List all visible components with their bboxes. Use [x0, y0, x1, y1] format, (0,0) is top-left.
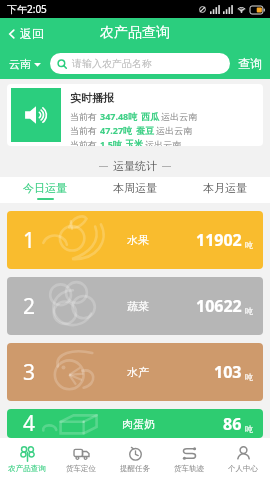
- staticText: 云南: [9, 57, 31, 71]
- button[interactable]: 2: [7, 277, 263, 335]
- staticText: 农产品查询: [100, 24, 170, 42]
- button[interactable]: 4: [7, 409, 263, 438]
- staticText: 当前有: [70, 138, 100, 146]
- button[interactable]: 提醒任务: [108, 438, 162, 480]
- staticText: 运出云南: [159, 110, 198, 122]
- staticText: 查询: [238, 56, 262, 71]
- button[interactable]: 云南: [6, 53, 44, 75]
- staticText: 1: [23, 226, 36, 255]
- staticText: 吨: [245, 372, 253, 382]
- staticText: 返回: [20, 26, 44, 41]
- staticText: 本月运量: [203, 181, 247, 195]
- button[interactable]: 3: [7, 343, 263, 401]
- button[interactable]: 请输入农产品名称: [50, 53, 230, 74]
- button[interactable]: 实时播报: [7, 84, 263, 146]
- staticText: 当前有: [70, 124, 100, 136]
- staticText: 玉米: [125, 138, 143, 146]
- button[interactable]: 农产品查询: [0, 438, 54, 480]
- button[interactable]: 本周运量: [90, 177, 180, 203]
- staticText: 86: [223, 413, 242, 435]
- staticText: 今日运量: [23, 181, 67, 195]
- staticText: 水产: [127, 365, 149, 379]
- staticText: 2: [23, 292, 36, 321]
- staticText: 347.48吨: [100, 110, 138, 122]
- staticText: 货车定位: [66, 464, 96, 473]
- staticText: 运出云南: [143, 138, 182, 146]
- staticText: 请输入农产品名称: [72, 57, 152, 70]
- staticText: 农产品查询: [8, 464, 46, 473]
- staticText: 西瓜: [141, 111, 159, 122]
- staticText: 本周运量: [113, 181, 157, 195]
- staticText: 肉蛋奶: [122, 417, 155, 431]
- staticText: 3: [23, 358, 36, 387]
- staticText: 10622: [196, 295, 242, 317]
- staticText: 水果: [127, 233, 149, 247]
- staticText: 个人中心: [228, 464, 258, 473]
- staticText: 吨: [245, 424, 253, 434]
- button[interactable]: 货车轨迹: [162, 438, 216, 480]
- button[interactable]: 本月运量: [180, 177, 270, 203]
- staticText: 运出云南: [154, 124, 193, 136]
- button[interactable]: 今日运量: [0, 177, 90, 203]
- staticText: 47.27吨: [100, 124, 133, 136]
- staticText: 4: [23, 409, 36, 438]
- staticText: 吨: [245, 306, 253, 316]
- staticText: 11902: [196, 229, 242, 251]
- staticText: 货车轨迹: [174, 464, 204, 473]
- button[interactable]: 返回: [0, 22, 52, 45]
- staticText: 1.5吨: [100, 138, 122, 146]
- staticText: 蔬菜: [127, 299, 149, 313]
- staticText: 103: [214, 361, 242, 383]
- staticText: 下午2:05: [7, 2, 47, 16]
- staticText: 蚕豆: [136, 125, 154, 136]
- button[interactable]: 货车定位: [54, 438, 108, 480]
- staticText: 当前有: [70, 110, 100, 122]
- staticText: 吨: [245, 240, 253, 250]
- staticText: 提醒任务: [120, 464, 150, 473]
- staticText: 实时播报: [70, 91, 114, 105]
- button[interactable]: 查询: [236, 52, 264, 75]
- button[interactable]: 个人中心: [216, 438, 270, 480]
- staticText: 运量统计: [113, 159, 157, 173]
- button[interactable]: 1: [7, 211, 263, 269]
